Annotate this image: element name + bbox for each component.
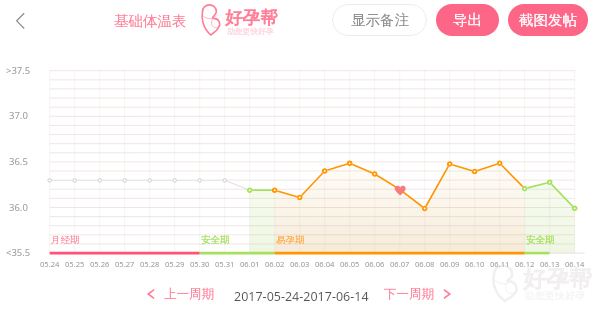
button[interactable]: 导出 [436, 4, 499, 36]
staticText: 好孕帮 [225, 7, 278, 29]
staticText: 37.0 [9, 109, 28, 122]
staticText: 显示备注 [351, 11, 409, 29]
button[interactable]: 上一周期 [144, 286, 214, 302]
staticText: 06.10 [465, 259, 485, 269]
staticText: 06.03 [290, 259, 310, 269]
staticText: 安全期 [201, 234, 230, 246]
staticText: 06.04 [315, 259, 335, 269]
staticText: 好孕帮 [523, 265, 592, 294]
staticText: 36.0 [9, 201, 28, 214]
staticText: 05.24 [40, 259, 60, 269]
staticText: 06.12 [515, 259, 535, 269]
staticText: 06.08 [415, 259, 435, 269]
staticText: 06.11 [490, 259, 510, 269]
staticText: 06.13 [540, 259, 560, 269]
staticText: 05.27 [115, 259, 135, 269]
staticText: 06.05 [340, 259, 360, 269]
staticText: 助您更快好孕 [525, 289, 585, 302]
staticText: 06.02 [265, 259, 285, 269]
staticText: 05.26 [90, 259, 110, 269]
staticText: 基础体温表 [114, 12, 187, 30]
button[interactable]: 显示备注 [332, 4, 427, 36]
staticText: 安全期 [526, 234, 555, 246]
staticText: 05.25 [65, 259, 85, 269]
button[interactable]: Back [5, 5, 37, 37]
staticText: 助您更快好孕 [227, 26, 274, 36]
staticText: 2017-05-24-2017-06-14 [234, 288, 369, 305]
button[interactable]: 截图发帖 [508, 4, 588, 36]
staticText: <35.5 [6, 246, 31, 259]
staticText: 截图发帖 [519, 11, 577, 29]
staticText: 36.5 [9, 155, 28, 168]
staticText: 05.30 [190, 259, 210, 269]
staticText: 05.29 [165, 259, 185, 269]
staticText: 06.07 [390, 259, 410, 269]
staticText: 上一周期 [164, 286, 214, 302]
staticText: 易孕期 [276, 234, 305, 246]
staticText: 05.31 [215, 259, 235, 269]
staticText: 06.06 [365, 259, 385, 269]
staticText: 06.01 [240, 259, 260, 269]
staticText: 下一周期 [384, 286, 434, 302]
staticText: 月经期 [51, 234, 80, 246]
staticText: 导出 [453, 11, 482, 29]
staticText: 06.14 [565, 259, 585, 269]
staticText: 05.28 [140, 259, 160, 269]
staticText: >37.5 [6, 64, 31, 77]
button[interactable]: 下一周期 [384, 286, 454, 302]
staticText: 06.09 [440, 259, 460, 269]
